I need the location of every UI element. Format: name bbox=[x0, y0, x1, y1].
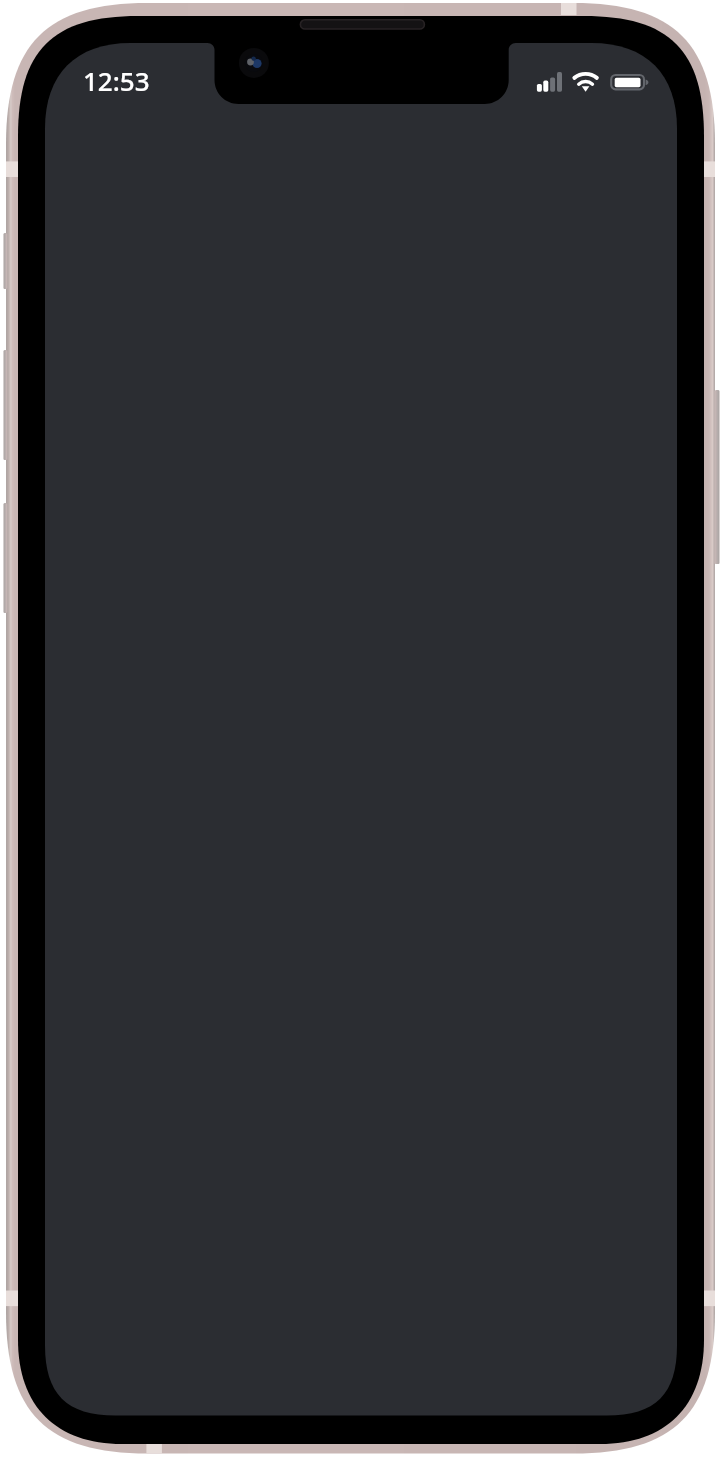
button[interactable]: Wi-Fi connected bbox=[569, 64, 603, 96]
button[interactable]: Cellular signal strength bbox=[531, 64, 568, 96]
button[interactable]: 12:53 bbox=[74, 58, 162, 94]
button[interactable]: Battery full bbox=[609, 64, 653, 96]
staticText: 12:53 bbox=[83, 63, 150, 98]
